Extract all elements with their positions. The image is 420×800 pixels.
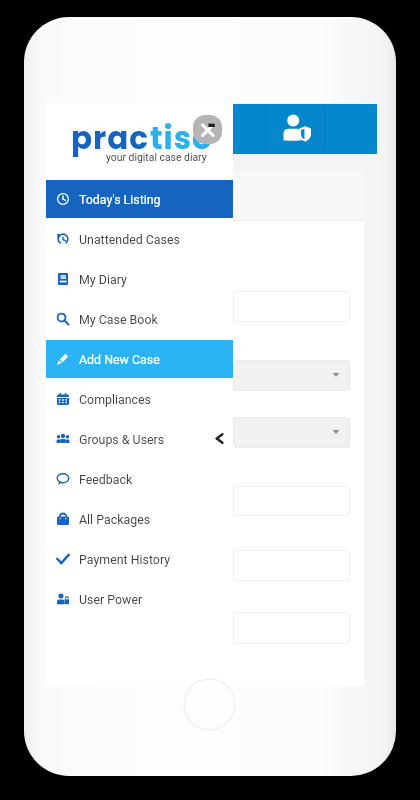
staticText: My Case Book bbox=[79, 312, 158, 327]
staticText: All Packages bbox=[79, 512, 151, 527]
button[interactable] bbox=[233, 612, 350, 644]
button[interactable]: Compliances bbox=[46, 380, 233, 418]
staticText: your digital case diary bbox=[106, 151, 207, 163]
button[interactable]: Unattended Cases bbox=[46, 220, 233, 258]
button[interactable]: My Diary bbox=[46, 260, 233, 298]
staticText: prac bbox=[71, 116, 150, 159]
staticText: Unattended Cases bbox=[79, 232, 180, 247]
button[interactable]: Today's Listing bbox=[46, 180, 233, 218]
button[interactable]: Close bbox=[193, 115, 222, 144]
staticText: Groups & Users bbox=[79, 432, 165, 447]
button[interactable] bbox=[233, 550, 350, 581]
button[interactable]: User Power bbox=[46, 580, 233, 618]
staticText: Feedback bbox=[79, 472, 133, 487]
staticText: tiso bbox=[150, 116, 213, 159]
staticText: Add New Case bbox=[79, 352, 160, 367]
button[interactable]: Profile bbox=[266, 104, 324, 154]
button[interactable]: All Packages bbox=[46, 500, 233, 538]
button[interactable] bbox=[233, 291, 350, 322]
button[interactable] bbox=[233, 417, 350, 448]
staticText: Today's Listing bbox=[79, 192, 161, 207]
staticText: Payment History bbox=[79, 552, 171, 567]
button[interactable] bbox=[233, 486, 350, 516]
staticText: User Power bbox=[79, 592, 143, 607]
button[interactable] bbox=[233, 360, 350, 391]
button[interactable]: Feedback bbox=[46, 460, 233, 498]
staticText: Compliances bbox=[79, 392, 152, 407]
button[interactable]: Groups & Users bbox=[46, 420, 233, 458]
button[interactable]: Payment History bbox=[46, 540, 233, 578]
staticText: My Diary bbox=[79, 272, 127, 287]
button[interactable]: Add New Case bbox=[46, 340, 233, 378]
button[interactable]: My Case Book bbox=[46, 300, 233, 338]
